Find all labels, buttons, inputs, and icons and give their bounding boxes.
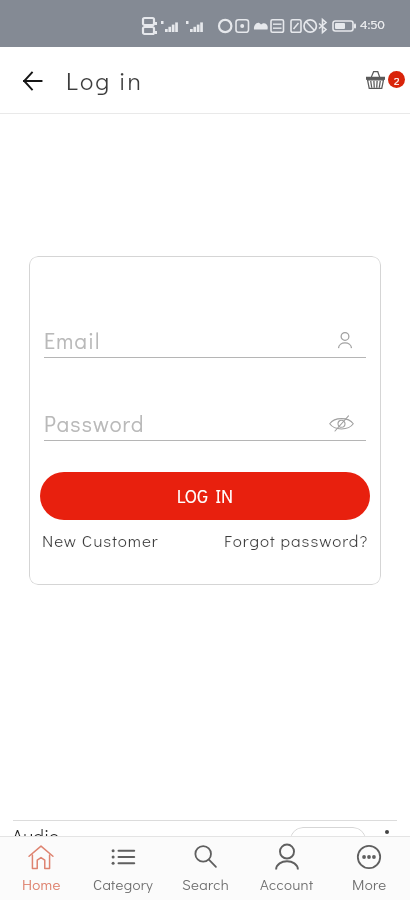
staticText: Log in xyxy=(66,64,143,97)
button[interactable]: Category xyxy=(82,837,164,900)
button[interactable]: See all xyxy=(290,827,366,854)
staticText: Account xyxy=(260,874,314,894)
button[interactable]: Forgot password? xyxy=(224,529,369,551)
button[interactable]: LOG IN xyxy=(40,472,370,520)
button[interactable]: More xyxy=(328,837,410,900)
staticText: Home xyxy=(22,874,61,894)
staticText: Email xyxy=(44,326,101,354)
staticText: Search xyxy=(182,874,229,894)
staticText: See all xyxy=(310,832,347,849)
staticText: New Customer xyxy=(42,529,159,551)
button[interactable]: New Customer xyxy=(42,529,159,551)
button[interactable]: Home xyxy=(0,837,82,900)
staticText: Category xyxy=(93,874,154,894)
staticText: Password xyxy=(44,409,145,437)
staticText: LOG IN xyxy=(177,485,234,508)
staticText: More xyxy=(352,874,387,894)
button[interactable]: Account xyxy=(246,837,328,900)
button[interactable]: Search xyxy=(164,837,246,900)
staticText: Forgot password? xyxy=(224,529,369,551)
staticText: 2 xyxy=(394,73,400,87)
button[interactable]: Back xyxy=(11,60,53,102)
button[interactable]: Cart xyxy=(363,59,407,103)
staticText: Audio xyxy=(12,823,60,848)
staticText: 4:50 xyxy=(360,15,385,32)
